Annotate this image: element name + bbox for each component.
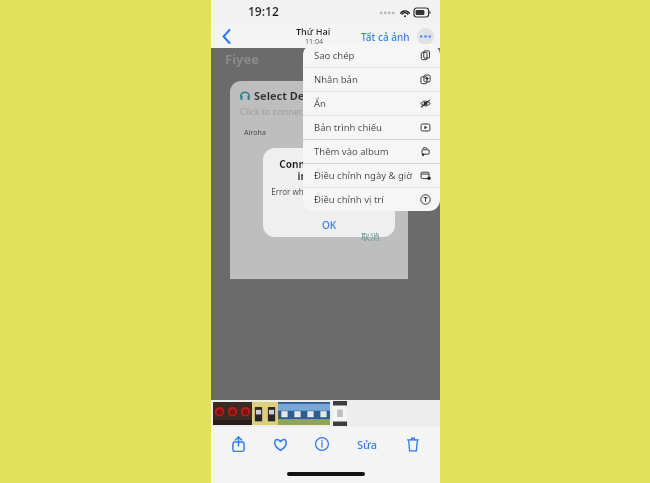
button[interactable] [239,402,252,425]
button[interactable] [278,402,291,425]
staticText: Sao chép [314,49,355,62]
staticText: OK [322,218,337,232]
button[interactable]: Bản trình chiếu [303,116,440,139]
staticText: Tất cả ảnh [361,30,410,44]
button[interactable]: 取消 [361,231,379,242]
staticText: Bản trình chiếu [314,121,382,134]
staticText: Error when read device type or chip type [268,186,390,207]
button[interactable]: Sửa [351,433,384,456]
button[interactable]: Điều chỉnh vị trí [303,188,440,211]
button[interactable]: Điều chỉnh ngày & giờ [303,164,440,187]
staticText: Điều chỉnh vị trí [314,193,384,206]
staticText: Thứ Hai [296,25,331,37]
button[interactable] [213,402,226,425]
staticText: Thêm vào album [314,145,389,158]
button[interactable]: More options [417,28,434,45]
button[interactable] [291,402,304,425]
button[interactable]: Back [215,25,237,47]
button[interactable] [265,402,278,425]
button[interactable]: OK [263,213,395,237]
button[interactable]: Info [309,431,335,457]
button[interactable]: Thêm vào album [303,140,440,163]
button[interactable] [317,402,330,425]
button[interactable] [252,402,265,425]
button[interactable]: Sao chép [303,44,440,67]
staticText: Click to connect TWS [240,105,328,117]
staticText: Ẩn [314,97,326,110]
staticText: 取消 [361,231,379,242]
staticText: Sửa [357,437,378,452]
button[interactable]: Delete [400,431,426,457]
staticText: Battery [246,129,274,140]
staticText: Điều chỉnh ngày & giờ [314,169,413,182]
staticText: 11:04 [305,37,323,47]
staticText: Nhân bản [314,73,358,86]
button[interactable]: Tất cả ảnh [359,30,412,44]
staticText: Connect error when initialization [271,157,387,183]
staticText: 19:12 [248,3,279,19]
button[interactable] [333,401,347,426]
staticText: Select Device [254,88,326,103]
staticText: Fiyee [225,50,259,68]
button[interactable]: Share [225,431,251,457]
button[interactable]: Nhân bản [303,68,440,91]
button[interactable] [226,402,239,425]
staticText: Airoha [244,128,266,138]
button[interactable]: Ẩn [303,92,440,115]
button[interactable] [304,402,317,425]
button[interactable]: Favorite [267,431,293,457]
